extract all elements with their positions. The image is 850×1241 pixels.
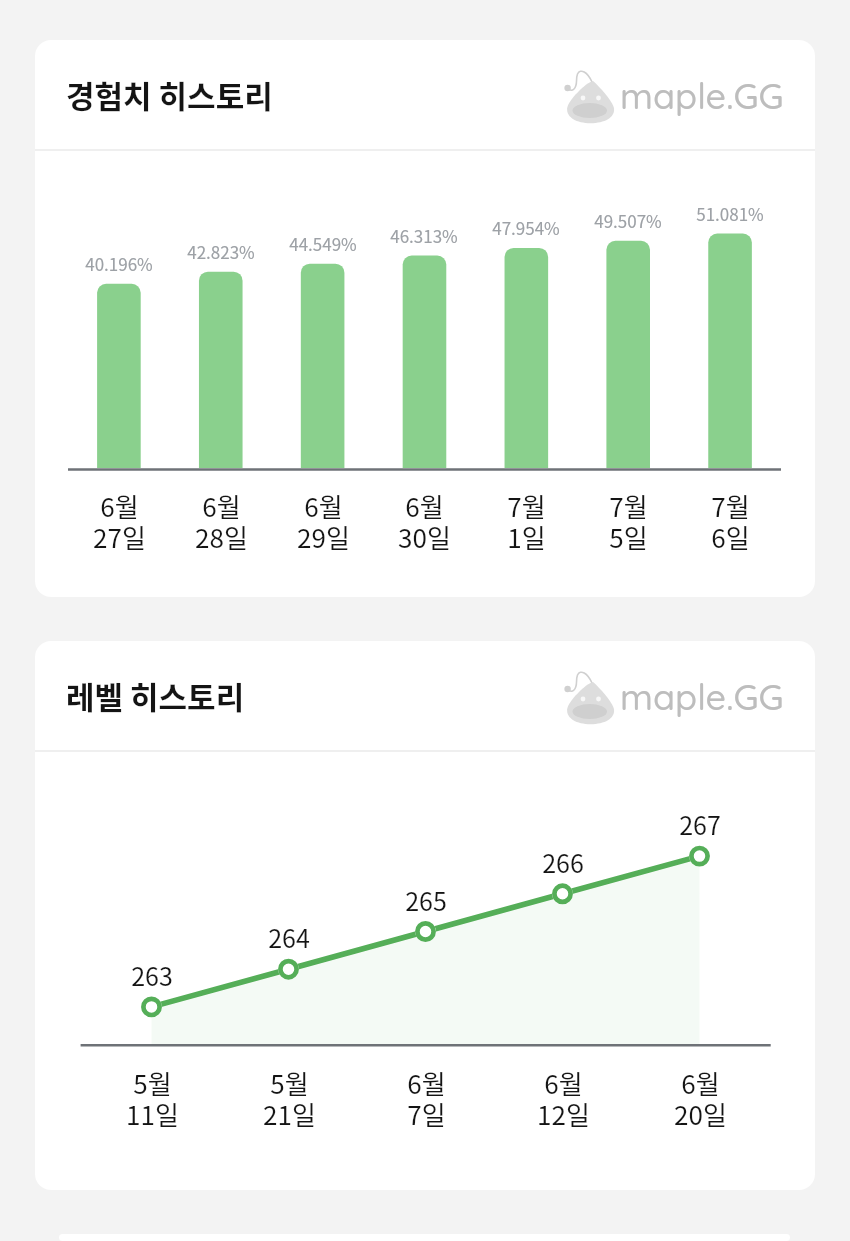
staticText: 267	[679, 806, 721, 842]
staticText: 264	[268, 919, 310, 955]
button[interactable]: 레벨 히스토리	[35, 641, 815, 1190]
staticText: 6일	[711, 518, 750, 556]
staticText: 266	[542, 844, 584, 880]
button[interactable]: 경험치 히스토리	[35, 40, 815, 597]
button[interactable]: maple.GG home	[562, 666, 784, 726]
staticText: 21일	[263, 1095, 316, 1133]
staticText: 47.954%	[492, 215, 560, 240]
staticText: maple.GG	[620, 73, 784, 118]
staticText: 49.507%	[594, 208, 662, 233]
staticText: 263	[131, 957, 173, 993]
staticText: 44.549%	[289, 231, 357, 256]
staticText: 27일	[93, 518, 146, 556]
staticText: 7월	[507, 487, 546, 525]
staticText: 레벨 히스토리	[66, 673, 245, 718]
button[interactable]: maple.GG home	[562, 65, 784, 125]
staticText: 6월	[405, 487, 444, 525]
staticText: 6월	[681, 1064, 720, 1102]
staticText: 5월	[133, 1064, 172, 1102]
staticText: maple.GG	[620, 674, 784, 719]
staticText: 7월	[711, 487, 750, 525]
staticText: 1일	[507, 518, 546, 556]
staticText: 6월	[202, 487, 241, 525]
staticText: 6월	[544, 1064, 583, 1102]
staticText: 46.313%	[390, 223, 458, 248]
staticText: 6월	[100, 487, 139, 525]
staticText: 7월	[609, 487, 648, 525]
staticText: 경험치 히스토리	[66, 72, 273, 117]
staticText: 28일	[195, 518, 248, 556]
staticText: 6월	[407, 1064, 446, 1102]
staticText: 51.081%	[696, 201, 764, 226]
staticText: 40.196%	[85, 251, 153, 276]
staticText: 12일	[537, 1095, 590, 1133]
staticText: 265	[405, 882, 447, 918]
staticText: 5일	[609, 518, 648, 556]
staticText: 20일	[674, 1095, 727, 1133]
staticText: 42.823%	[187, 239, 255, 264]
staticText: 6월	[304, 487, 343, 525]
staticText: 11일	[126, 1095, 179, 1133]
staticText: 29일	[297, 518, 350, 556]
staticText: 7일	[407, 1095, 446, 1133]
staticText: 30일	[398, 518, 451, 556]
staticText: 5월	[270, 1064, 309, 1102]
